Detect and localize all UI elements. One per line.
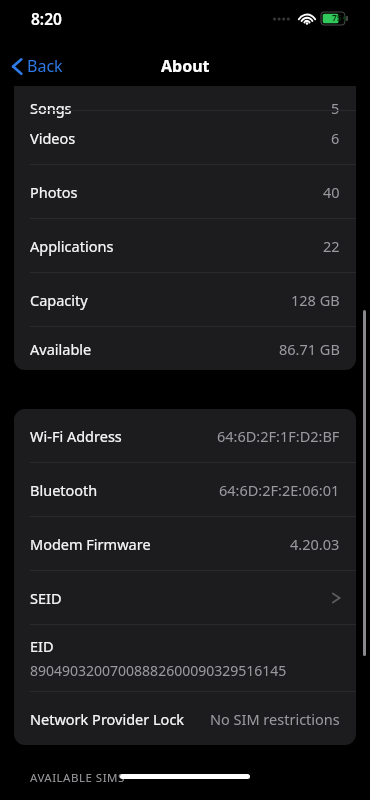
staticText: 6 <box>331 128 340 148</box>
staticText: Capacity <box>30 290 88 310</box>
staticText: 128 GB <box>291 290 340 310</box>
staticText: 5 <box>331 98 340 118</box>
button[interactable]: Network Provider Lock <box>14 692 356 745</box>
staticText: Bluetooth <box>30 480 98 500</box>
staticText: Modem Firmware <box>30 534 151 554</box>
staticText: Applications <box>30 236 114 256</box>
staticText: Songs <box>30 98 72 118</box>
staticText: 4.20.03 <box>290 534 340 554</box>
button[interactable]: Photos <box>14 165 356 218</box>
staticText: 64:6D:2F:2E:06:01 <box>219 480 340 500</box>
staticText: 75 <box>332 12 342 24</box>
staticText: Videos <box>30 128 76 148</box>
staticText: About <box>161 55 210 77</box>
staticText: 89049032007008882600090329516145 <box>30 661 287 680</box>
button[interactable]: Wi-Fi Address <box>14 409 356 462</box>
button[interactable]: Available <box>14 327 356 370</box>
staticText: 64:6D:2F:1F:D2:BF <box>217 426 340 446</box>
other: Open <box>332 591 340 605</box>
staticText: Wi-Fi Address <box>30 426 122 446</box>
staticText: 40 <box>323 182 340 202</box>
staticText: 86.71 GB <box>279 339 340 359</box>
staticText: Network Provider Lock <box>30 709 185 729</box>
button[interactable]: Applications <box>14 219 356 272</box>
staticText: Photos <box>30 182 78 202</box>
staticText: Available <box>30 339 92 359</box>
button[interactable]: Bluetooth <box>14 463 356 516</box>
button[interactable]: SEID <box>14 571 356 624</box>
button[interactable]: Videos <box>14 111 356 164</box>
button[interactable]: Modem Firmware <box>14 517 356 570</box>
staticText: Back <box>27 55 63 77</box>
staticText: EID <box>30 636 54 656</box>
button[interactable]: Capacity <box>14 273 356 326</box>
staticText: 22 <box>323 236 340 256</box>
staticText: No SIM restrictions <box>210 709 340 729</box>
staticText: SEID <box>30 588 62 608</box>
staticText: AVAILABLE SIMS <box>30 770 125 786</box>
staticText: 8:20 <box>31 8 62 29</box>
button[interactable]: EID <box>14 625 356 691</box>
button[interactable]: Back <box>8 49 67 83</box>
